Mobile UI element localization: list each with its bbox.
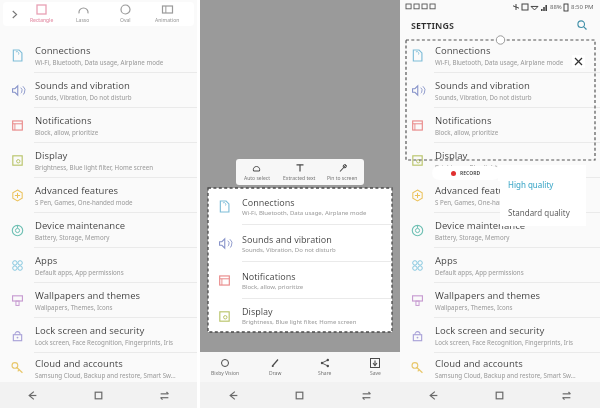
staticText: Sounds and vibration — [435, 79, 530, 92]
button[interactable]: Cloud and accounts — [0, 353, 197, 382]
button[interactable]: Back — [0, 382, 65, 408]
button[interactable]: Sounds and vibration — [208, 225, 392, 261]
button[interactable]: Extracted text — [278, 159, 321, 185]
button[interactable]: Bixby Vision — [200, 352, 250, 382]
staticText: Oval — [120, 17, 131, 24]
button[interactable]: Animation — [146, 2, 188, 26]
button[interactable]: RECORD — [432, 166, 500, 180]
button[interactable]: Pin to screen — [321, 159, 364, 185]
button[interactable]: Expand — [7, 7, 21, 21]
staticText: SETTINGS — [411, 19, 454, 31]
staticText: Wi-Fi, Bluetooth, Data usage, Airplane m… — [242, 209, 367, 217]
staticText: Display — [435, 149, 468, 162]
staticText: Connections — [242, 196, 295, 208]
staticText: Apps — [435, 254, 458, 267]
staticText: Cloud and accounts — [435, 357, 523, 370]
button[interactable]: Display — [0, 143, 197, 177]
staticText: Notifications — [435, 114, 492, 127]
button[interactable]: Device maintenance — [400, 213, 600, 247]
staticText: Wi-Fi, Bluetooth, Data usage, Airplane m… — [35, 58, 164, 66]
button[interactable]: Sounds and vibration — [0, 73, 197, 107]
button[interactable]: Notifications — [0, 108, 197, 142]
button[interactable]: Advanced features — [0, 178, 197, 212]
button[interactable]: Lasso — [62, 2, 104, 26]
button[interactable]: Connections — [400, 38, 600, 72]
button[interactable]: Oval — [104, 2, 146, 26]
staticText: Wallpapers, Themes, Icons — [435, 303, 513, 311]
staticText: Notifications — [35, 114, 92, 127]
staticText: Block, allow, prioritize — [35, 128, 99, 136]
staticText: Wallpapers and themes — [35, 289, 141, 302]
staticText: Rectangle — [30, 17, 54, 24]
button[interactable]: Rectangle — [21, 2, 62, 26]
staticText: Sounds, Vibration, Do not disturb — [435, 93, 532, 101]
button[interactable]: Display — [400, 143, 600, 177]
button[interactable]: Draw — [250, 352, 300, 382]
button[interactable]: Back — [400, 382, 466, 408]
button[interactable]: Advanced features — [400, 178, 600, 212]
staticText: Standard quality — [508, 207, 570, 218]
button[interactable]: Connections — [208, 188, 392, 224]
staticText: Device maintenance — [35, 219, 126, 232]
staticText: Wallpapers, Themes, Icons — [35, 303, 113, 311]
staticText: Lock screen and security — [35, 324, 145, 337]
button[interactable]: High quality — [500, 170, 586, 198]
button[interactable]: Cloud and accounts — [400, 353, 600, 382]
button[interactable]: Close — [572, 55, 585, 68]
staticText: High quality — [508, 179, 554, 190]
button[interactable]: Recents — [333, 382, 400, 408]
button[interactable]: Save — [350, 352, 400, 382]
staticText: Lock screen, Face Recognition, Fingerpri… — [435, 338, 573, 346]
staticText: Draw — [269, 370, 282, 377]
button[interactable]: Apps — [400, 248, 600, 282]
button[interactable]: Connections — [0, 38, 197, 72]
staticText: Default apps, App permissions — [435, 268, 524, 276]
button[interactable]: Apps — [0, 248, 197, 282]
staticText: Auto select — [244, 175, 270, 182]
button[interactable]: Home — [466, 382, 533, 408]
button[interactable]: Recents — [533, 382, 600, 408]
staticText: Brightness, Blue light filter, Home scre… — [435, 163, 554, 171]
staticText: Advanced features — [435, 184, 519, 197]
staticText: Cloud and accounts — [35, 357, 123, 370]
button[interactable]: Back — [200, 382, 266, 408]
staticText: Battery, Storage, Memory — [435, 233, 510, 241]
staticText: Share — [318, 370, 332, 377]
staticText: Block, allow, prioritize — [242, 283, 304, 291]
button[interactable]: Search — [575, 18, 589, 32]
staticText: Sounds, Vibration, Do not disturb — [35, 93, 132, 101]
button[interactable]: Home — [65, 382, 131, 408]
staticText: Samsung Cloud, Backup and restore, Smart… — [35, 371, 176, 379]
staticText: Apps — [35, 254, 58, 267]
staticText: RECORD — [460, 170, 481, 177]
staticText: Block, allow, prioritize — [435, 128, 499, 136]
button[interactable]: Notifications — [400, 108, 600, 142]
button[interactable]: Recents — [131, 382, 197, 408]
staticText: Animation — [155, 17, 180, 24]
staticText: Notifications — [242, 270, 296, 282]
staticText: Wi-Fi, Bluetooth, Data usage, Airplane m… — [435, 58, 564, 66]
button[interactable]: Home — [266, 382, 333, 408]
staticText: Bixby Vision — [211, 370, 240, 377]
button[interactable]: Display — [208, 299, 392, 332]
staticText: Sounds, Vibration, Do not disturb — [242, 246, 336, 254]
staticText: Battery, Storage, Memory — [35, 233, 110, 241]
button[interactable]: Wallpapers and themes — [0, 283, 197, 317]
staticText: Wallpapers and themes — [435, 289, 541, 302]
button[interactable]: Notifications — [208, 262, 392, 298]
staticText: Connections — [35, 44, 91, 57]
staticText: Display — [35, 149, 68, 162]
button[interactable]: Lock screen and security — [0, 318, 197, 352]
button[interactable]: Standard quality — [500, 198, 586, 226]
button[interactable]: Share — [300, 352, 350, 382]
staticText: Advanced features — [35, 184, 119, 197]
button[interactable]: Device maintenance — [0, 213, 197, 247]
staticText: 8:50 PM — [571, 3, 594, 11]
staticText: Sounds and vibration — [242, 233, 332, 245]
button[interactable]: Wallpapers and themes — [400, 283, 600, 317]
button[interactable]: Sounds and vibration — [400, 73, 600, 107]
button[interactable]: Auto select — [236, 159, 278, 185]
button[interactable]: Lock screen and security — [400, 318, 600, 352]
